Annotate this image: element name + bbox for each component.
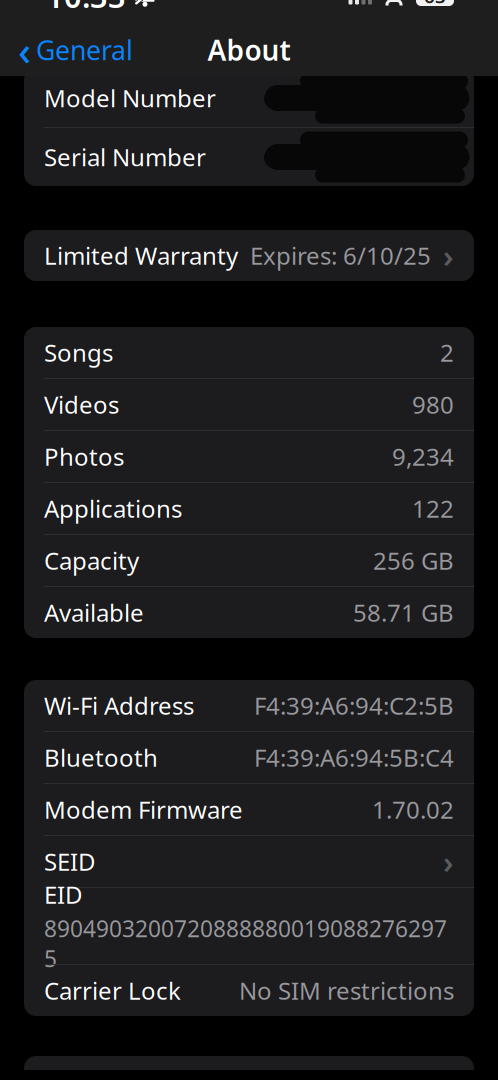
- staticText: EID: [44, 878, 83, 910]
- staticText: ›: [443, 235, 454, 276]
- button[interactable]: Applications: [24, 483, 474, 534]
- staticText: General: [36, 32, 133, 68]
- staticText: Carrier Lock: [44, 975, 181, 1006]
- button[interactable]: Photos: [24, 431, 474, 482]
- button[interactable]: EID: [24, 888, 474, 964]
- staticText: ›: [443, 841, 454, 882]
- button[interactable]: Modem Firmware: [24, 784, 474, 835]
- button[interactable]: ESIM: [24, 1056, 474, 1080]
- button[interactable]: Songs: [24, 327, 474, 378]
- button[interactable]: Limited Warranty: [24, 230, 474, 281]
- staticText: 980: [412, 389, 454, 420]
- staticText: Modem Firmware: [44, 794, 243, 825]
- staticText: 1.70.02: [372, 794, 454, 825]
- staticText: Bluetooth: [44, 742, 158, 773]
- staticText: ‹: [18, 23, 31, 76]
- staticText: ESIM: [44, 1066, 100, 1080]
- staticText: Available: [44, 597, 144, 628]
- staticText: Photos: [44, 441, 124, 472]
- button[interactable]: Videos: [24, 379, 474, 430]
- button[interactable]: Capacity: [24, 535, 474, 586]
- button[interactable]: Serial Number: [24, 131, 474, 182]
- button[interactable]: Wi-Fi Address: [24, 680, 474, 731]
- staticText: 63: [424, 0, 446, 8]
- button[interactable]: Model Number: [24, 72, 474, 123]
- staticText: No SIM restrictions: [239, 975, 454, 1006]
- staticText: F4:39:A6:94:C2:5B: [254, 690, 454, 721]
- button[interactable]: Bluetooth: [24, 732, 474, 783]
- staticText: Songs: [44, 337, 113, 368]
- button[interactable]: Available: [24, 587, 474, 638]
- staticText: 122: [412, 493, 454, 524]
- button[interactable]: Carrier Lock: [24, 965, 474, 1016]
- button[interactable]: ‹: [4, 28, 147, 72]
- staticText: Capacity: [44, 545, 139, 576]
- staticText: Model Number: [44, 82, 216, 114]
- staticText: F4:39:A6:94:5B:C4: [254, 742, 454, 773]
- staticText: Serial Number: [44, 141, 206, 173]
- staticText: About: [207, 31, 290, 69]
- staticText: Applications: [44, 493, 182, 524]
- staticText: Videos: [44, 389, 119, 420]
- button[interactable]: SEID: [24, 836, 474, 887]
- staticText: 10:33: [46, 0, 126, 16]
- staticText: 89049032007208888800190882762975: [44, 913, 447, 973]
- staticText: 256 GB: [373, 545, 454, 576]
- staticText: SEID: [44, 846, 96, 877]
- staticText: Wi-Fi Address: [44, 690, 194, 721]
- staticText: 9,234: [392, 441, 454, 472]
- staticText: 58.71 GB: [353, 597, 454, 628]
- staticText: 2: [440, 337, 454, 368]
- staticText: Expires: 6/10/25: [250, 240, 431, 271]
- staticText: Limited Warranty: [44, 240, 238, 271]
